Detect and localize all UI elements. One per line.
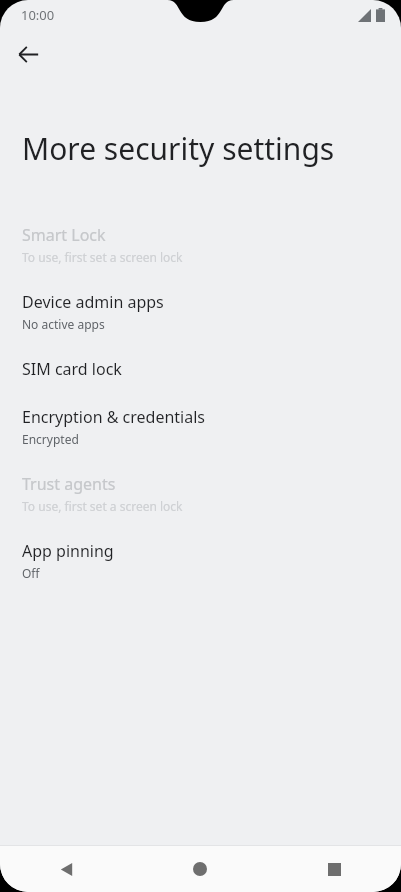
button[interactable]: Recent apps (267, 846, 401, 892)
staticText: Encryption & credentials (22, 406, 205, 428)
staticText: Smart Lock (22, 224, 106, 246)
staticText: 10:00 (21, 6, 55, 24)
staticText: SIM card lock (22, 358, 122, 380)
button[interactable]: Device admin apps (0, 278, 401, 345)
staticText: More security settings (22, 128, 385, 169)
staticText: To use, first set a screen lock (22, 249, 183, 265)
button[interactable]: Encryption & credentials (0, 393, 401, 460)
button[interactable]: Back (8, 34, 48, 74)
button[interactable]: Smart Lock (0, 211, 401, 278)
staticText: No active apps (22, 316, 105, 332)
staticText: Off (22, 565, 40, 581)
button[interactable]: Back (0, 846, 133, 892)
staticText: Encrypted (22, 431, 79, 447)
staticText: Device admin apps (22, 291, 164, 313)
button[interactable]: Trust agents (0, 460, 401, 527)
staticText: App pinning (22, 540, 114, 562)
button[interactable]: SIM card lock (0, 345, 401, 393)
staticText: Trust agents (22, 473, 116, 495)
staticText: To use, first set a screen lock (22, 498, 183, 514)
button[interactable]: App pinning (0, 527, 401, 594)
button[interactable]: Home (133, 846, 267, 892)
